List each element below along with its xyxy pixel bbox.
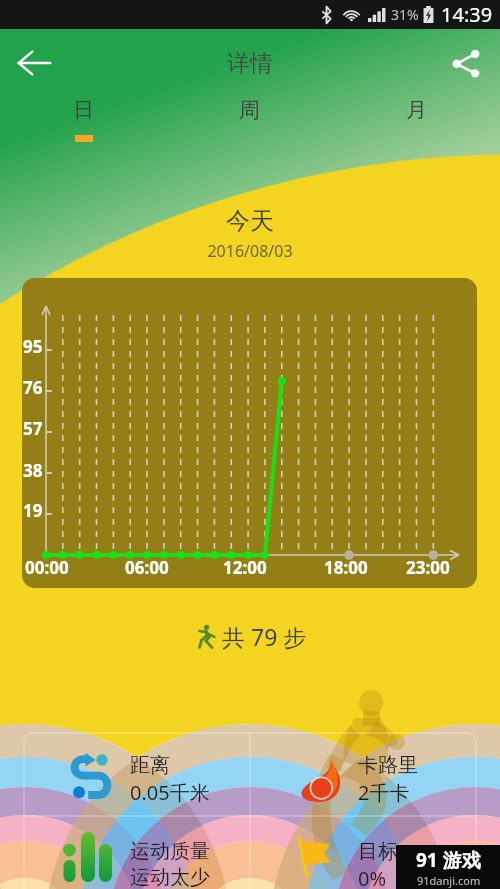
staticText: 06:00 <box>125 556 169 579</box>
staticText: 91danji.com <box>417 873 481 888</box>
button[interactable]: 卡路里 <box>250 733 476 816</box>
staticText: 14:39 <box>441 1 493 28</box>
staticText: 2千卡 <box>358 779 410 806</box>
staticText: 月 <box>406 97 427 123</box>
staticText: 23:00 <box>406 556 450 579</box>
staticText: 12:00 <box>223 556 267 579</box>
staticText: 0% <box>358 865 387 889</box>
staticText: 00:00 <box>25 556 69 579</box>
staticText: 31% <box>391 5 419 24</box>
staticText: 18:00 <box>324 556 368 579</box>
button[interactable]: 月 <box>333 97 500 154</box>
staticText: 76 <box>23 376 43 399</box>
button[interactable]: 周 <box>166 97 333 154</box>
button[interactable]: Back <box>8 37 60 89</box>
staticText: 95 <box>23 335 43 358</box>
staticText: 今天 <box>0 206 500 236</box>
button[interactable]: 距离 <box>24 733 250 816</box>
staticText: 38 <box>23 459 43 482</box>
button[interactable]: 目标 <box>250 816 476 889</box>
staticText: 0.05千米 <box>130 779 210 806</box>
staticText: 卡路里 <box>358 753 418 778</box>
staticText: 57 <box>23 417 43 440</box>
staticText: 详情 <box>227 49 273 78</box>
staticText: 91 游戏 <box>416 847 481 873</box>
staticText: 距离 <box>130 753 170 778</box>
button[interactable]: 运动质量 <box>24 816 250 889</box>
staticText: 运动太少 <box>130 865 210 889</box>
staticText: 19 <box>23 499 43 522</box>
staticText: 周 <box>239 97 260 123</box>
staticText: 运动质量 <box>130 839 210 864</box>
staticText: 日 <box>73 97 94 123</box>
button[interactable]: Share <box>442 39 490 87</box>
staticText: 2016/08/03 <box>0 240 500 262</box>
staticText: 共 79 步 <box>222 621 307 652</box>
button[interactable]: 日 <box>0 97 166 154</box>
staticText: 目标 <box>358 839 398 864</box>
